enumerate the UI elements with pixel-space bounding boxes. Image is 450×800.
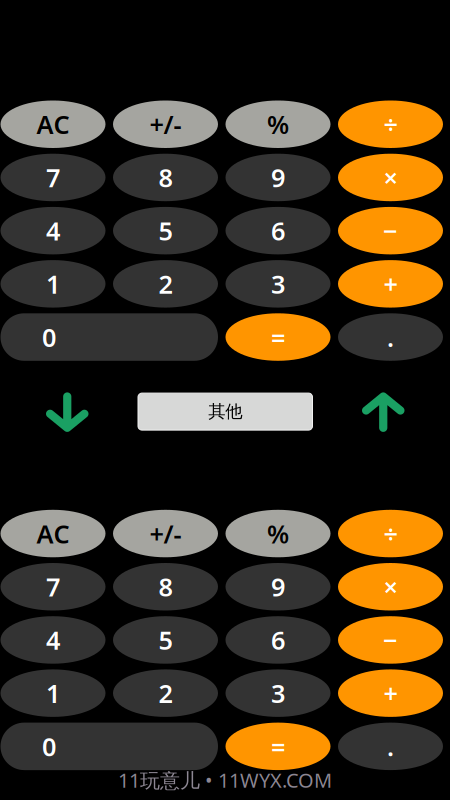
button[interactable]: + xyxy=(338,669,443,717)
button[interactable]: 8 xyxy=(113,154,218,201)
staticText: . xyxy=(387,320,394,354)
button[interactable]: ÷ xyxy=(338,510,443,557)
button[interactable]: Move down xyxy=(46,392,88,432)
button[interactable]: 5 xyxy=(113,207,218,254)
staticText: + xyxy=(383,676,397,710)
staticText: 0 xyxy=(42,320,56,354)
staticText: 1 xyxy=(46,267,60,301)
button[interactable]: 3 xyxy=(225,260,330,308)
staticText: − xyxy=(383,623,398,657)
staticText: 3 xyxy=(271,676,285,710)
button[interactable]: − xyxy=(338,616,443,664)
staticText: 5 xyxy=(158,623,172,657)
button[interactable]: ÷ xyxy=(338,100,443,148)
staticText: 0 xyxy=(42,729,56,763)
button[interactable]: 6 xyxy=(225,207,330,254)
button[interactable]: 4 xyxy=(0,207,105,254)
button[interactable]: × xyxy=(338,563,443,610)
staticText: +/- xyxy=(149,517,181,550)
button[interactable]: 4 xyxy=(0,616,105,664)
staticText: 6 xyxy=(271,214,285,247)
button[interactable]: 5 xyxy=(113,616,218,664)
staticText: 其他 xyxy=(208,401,242,422)
staticText: 5 xyxy=(158,214,172,247)
staticText: 7 xyxy=(46,570,60,603)
button[interactable]: 0 xyxy=(0,313,218,361)
staticText: 9 xyxy=(271,570,285,603)
staticText: ÷ xyxy=(383,517,397,550)
staticText: × xyxy=(383,161,397,194)
staticText: AC xyxy=(36,107,69,141)
button[interactable]: AC xyxy=(0,100,105,148)
staticText: 6 xyxy=(271,623,285,657)
button[interactable]: 2 xyxy=(113,260,218,308)
staticText: 8 xyxy=(158,161,172,194)
button[interactable]: . xyxy=(338,723,443,770)
button[interactable]: 6 xyxy=(225,616,330,664)
button[interactable]: +/- xyxy=(113,510,218,557)
staticText: 8 xyxy=(158,570,172,603)
staticText: 7 xyxy=(46,161,60,194)
button[interactable]: 其他 xyxy=(138,393,312,430)
button[interactable]: 3 xyxy=(225,669,330,717)
staticText: 4 xyxy=(46,623,60,657)
staticText: = xyxy=(271,320,285,354)
staticText: 2 xyxy=(158,267,172,301)
button[interactable]: 9 xyxy=(225,154,330,201)
button[interactable]: − xyxy=(338,207,443,254)
button[interactable]: 7 xyxy=(0,154,105,201)
button[interactable]: % xyxy=(225,100,330,148)
button[interactable]: = xyxy=(225,313,330,361)
button[interactable]: 8 xyxy=(113,563,218,610)
staticText: % xyxy=(267,517,289,550)
button[interactable]: × xyxy=(338,154,443,201)
staticText: % xyxy=(267,107,289,141)
button[interactable]: + xyxy=(338,260,443,308)
button[interactable]: 9 xyxy=(225,563,330,610)
staticText: 4 xyxy=(46,214,60,247)
staticText: 11玩意儿 • 11WYX.COM xyxy=(118,767,332,793)
staticText: . xyxy=(387,729,394,763)
staticText: × xyxy=(383,570,397,603)
staticText: = xyxy=(271,729,285,763)
button[interactable]: 0 xyxy=(0,723,218,770)
staticText: AC xyxy=(36,517,69,550)
staticText: − xyxy=(383,214,398,247)
button[interactable]: . xyxy=(338,313,443,361)
staticText: 3 xyxy=(271,267,285,301)
button[interactable]: +/- xyxy=(113,100,218,148)
staticText: ÷ xyxy=(383,107,397,141)
button[interactable]: 1 xyxy=(0,260,105,308)
staticText: 9 xyxy=(271,161,285,194)
button[interactable]: 2 xyxy=(113,669,218,717)
button[interactable]: = xyxy=(225,723,330,770)
button[interactable]: 7 xyxy=(0,563,105,610)
staticText: + xyxy=(383,267,397,301)
button[interactable]: Move up xyxy=(362,392,404,432)
staticText: 1 xyxy=(46,676,60,710)
button[interactable]: % xyxy=(225,510,330,557)
staticText: +/- xyxy=(149,107,181,141)
button[interactable]: 1 xyxy=(0,669,105,717)
staticText: 2 xyxy=(158,676,172,710)
button[interactable]: AC xyxy=(0,510,105,557)
